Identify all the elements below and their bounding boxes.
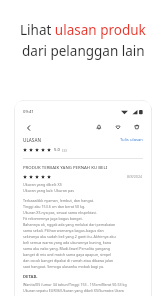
staticText: Tulis ulasan	[120, 137, 143, 143]
staticText: sama sekali. Pilihan warnanya bagus-bagu…	[23, 228, 104, 233]
staticText: 09:41	[23, 109, 34, 115]
staticText: Ukuran XS-nya pas, sesuai sama ekspektas…	[23, 210, 97, 215]
staticText: Tinggi aku 153.6 cm dan berat 50 kg.	[23, 204, 86, 209]
staticText: ULASAN	[23, 137, 41, 143]
staticText: Terbaaaikkk nyaman, lembut, dan hangat.	[23, 198, 94, 203]
staticText: 8/8/2024	[127, 174, 143, 179]
staticText: DETAIL	[23, 274, 38, 280]
staticText: banget di mix and match sama gaya apapun…	[23, 252, 112, 257]
staticText: Fit rekomennya juga bagus banget.	[23, 216, 83, 221]
staticText: 5.0	[54, 147, 60, 153]
button[interactable]: Tulis ulasan	[120, 137, 143, 143]
button[interactable]: Wishlist	[112, 121, 124, 133]
staticText: saat hangout. Semoga ulasanku mobak bagi…	[23, 264, 104, 269]
staticText: Wanita/XS /umur 34 tahun/Tinggi 153 - 15…	[23, 282, 127, 287]
staticText: Lihat ulasan produk	[20, 21, 146, 39]
button[interactable]: Cart	[131, 121, 143, 133]
staticText: dan cocok banget dipakai di rumah atau d…	[23, 258, 114, 263]
staticText: Ukuran sepatu EUR36/Ukuran yang dibeli X…	[23, 288, 124, 293]
staticText: Bahannya ok, nggak ada yang melukai dari…	[23, 222, 116, 227]
staticText: beli semua warna yang ada ukurannya kuni…	[23, 240, 111, 245]
button[interactable]: Notifications	[93, 121, 105, 133]
staticText: PRODUK TERBAIK YANG PERNAH KU BELI	[23, 164, 108, 170]
staticText: sama aku nako yang. Mudi-fawel Persolitu…	[23, 246, 110, 251]
staticText: dari pelanggan lain	[22, 42, 145, 60]
staticText: Ukuran yang kuk: Ukuran pas	[23, 188, 75, 193]
staticText: sekiranya aku sudah beli yang 2 ganti it…	[23, 234, 116, 239]
staticText: Ukuran yang dibeli: XS	[23, 182, 62, 187]
staticText: (3)	[62, 148, 67, 153]
button[interactable]: Back	[23, 122, 34, 133]
